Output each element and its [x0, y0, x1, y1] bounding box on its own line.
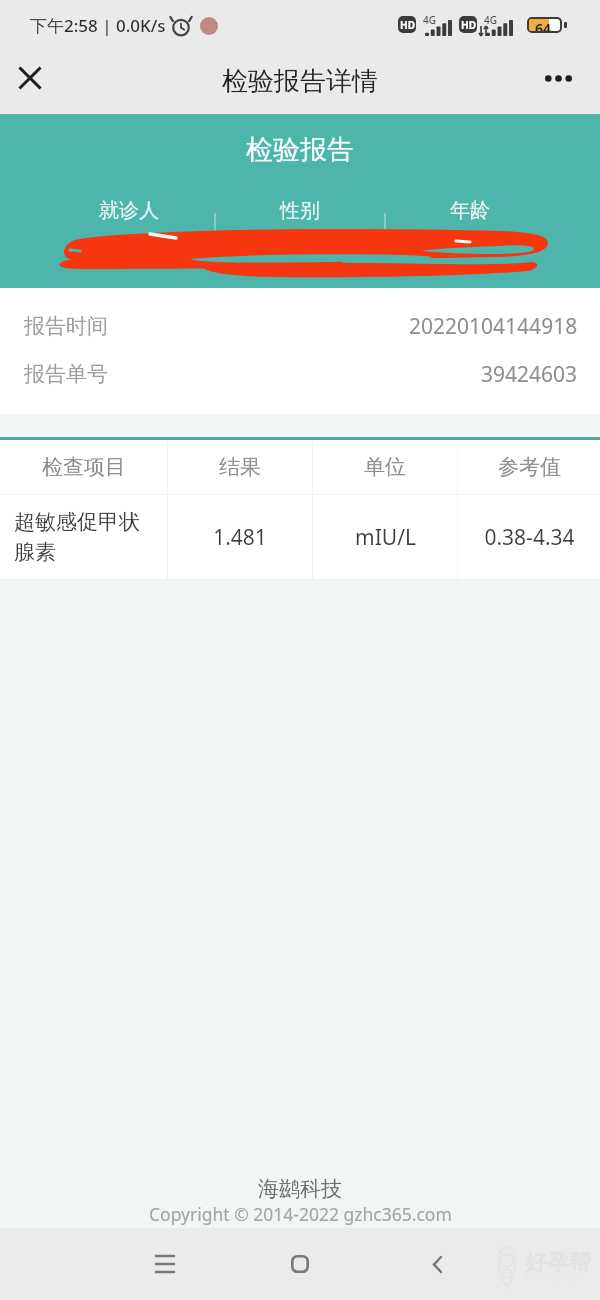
staticText: 检验报告	[246, 133, 354, 167]
button[interactable]: 报告时间	[0, 302, 600, 350]
staticText: 参考值	[498, 454, 561, 480]
staticText: mIU/L	[355, 523, 416, 552]
staticText: 0.38-4.34	[484, 523, 575, 552]
staticText: 1.481	[213, 523, 267, 552]
button[interactable]: Close	[6, 54, 54, 102]
button[interactable]: Recent apps	[137, 1236, 193, 1292]
staticText: Copyright © 2014-2022 gzhc365.com	[149, 1202, 452, 1226]
staticText: 单位	[364, 454, 406, 480]
staticText: 年龄	[450, 198, 490, 223]
button[interactable]: Home	[272, 1236, 328, 1292]
staticText: 检查项目	[42, 454, 126, 480]
button[interactable]: Back	[409, 1236, 465, 1292]
staticText: HD	[400, 18, 415, 32]
staticText: 检验报告详情	[222, 65, 378, 98]
staticText: 结果	[219, 454, 261, 480]
staticText: 4G	[484, 13, 497, 27]
staticText: 下午2:58 | 0.0K/s	[30, 14, 166, 37]
button[interactable]: More options	[534, 54, 582, 102]
staticText: HD	[461, 18, 476, 32]
staticText: 性别	[280, 198, 320, 223]
staticText: 海鹚科技	[258, 1176, 342, 1202]
button[interactable]: 报告单号	[0, 350, 600, 398]
staticText: 报告时间	[24, 313, 108, 339]
staticText: 39424603	[481, 360, 578, 389]
staticText: 4G	[423, 13, 436, 27]
staticText: 就诊人	[99, 198, 159, 223]
staticText: 超敏感促甲状腺素	[14, 509, 155, 566]
staticText: 64	[535, 19, 552, 31]
staticText: 20220104144918	[409, 312, 578, 341]
staticText: 报告单号	[24, 361, 108, 387]
staticText: 好孕帮	[525, 1249, 591, 1277]
